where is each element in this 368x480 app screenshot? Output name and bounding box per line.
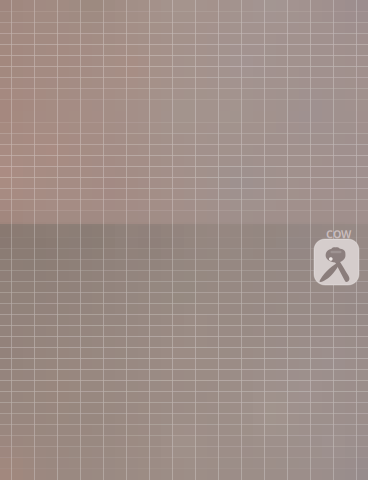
staticText: COW [326,227,351,241]
button[interactable]: App badge [314,239,359,285]
